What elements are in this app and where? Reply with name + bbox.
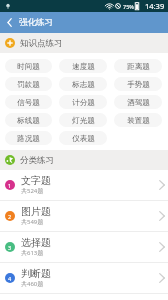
button[interactable]: 标线题	[5, 113, 52, 127]
staticText: 计分题	[72, 98, 95, 107]
staticText: 2	[8, 213, 12, 220]
button[interactable]: 酒驾题	[114, 95, 162, 109]
staticText: 共549题	[21, 218, 44, 226]
staticText: 共613题	[21, 249, 44, 257]
button[interactable]: 计分题	[59, 95, 107, 109]
staticText: 标线题	[17, 116, 40, 125]
staticText: 强化练习	[19, 17, 53, 28]
button[interactable]: 速度题	[59, 59, 107, 73]
staticText: 4	[8, 275, 12, 282]
staticText: 共524题	[21, 187, 44, 195]
button[interactable]: 3	[0, 232, 168, 263]
button[interactable]: 装置题	[114, 113, 162, 127]
staticText: 14:39	[145, 1, 165, 11]
button[interactable]: 标志题	[59, 77, 107, 91]
staticText: 75%	[123, 3, 134, 10]
staticText: 判断题	[21, 267, 51, 280]
staticText: 路况题	[17, 134, 40, 143]
button[interactable]: 距离题	[114, 59, 162, 73]
staticText: 分类练习	[20, 155, 54, 166]
button[interactable]: 手势题	[114, 77, 162, 91]
staticText: 手势题	[127, 80, 150, 89]
staticText: 距离题	[127, 62, 150, 71]
staticText: 知识点练习	[20, 38, 63, 49]
button[interactable]: Back	[0, 12, 18, 33]
button[interactable]: 4	[0, 263, 168, 294]
button[interactable]: 罚款题	[5, 77, 52, 91]
button[interactable]: 信号题	[5, 95, 52, 109]
staticText: 标志题	[72, 80, 95, 89]
staticText: 罚款题	[17, 80, 40, 89]
button[interactable]: 时间题	[5, 59, 52, 73]
staticText: 文字题	[21, 174, 51, 187]
staticText: 酒驾题	[127, 98, 150, 107]
staticText: 灯光题	[72, 116, 95, 125]
staticText: 装置题	[127, 116, 150, 125]
staticText: 3	[8, 244, 12, 251]
button[interactable]: 2	[0, 201, 168, 232]
button[interactable]: 路况题	[5, 131, 52, 145]
staticText: 共460题	[21, 280, 44, 288]
staticText: 时间题	[17, 62, 40, 71]
staticText: 仪表题	[72, 134, 95, 143]
button[interactable]: 灯光题	[59, 113, 107, 127]
staticText: 1	[8, 182, 12, 189]
button[interactable]: 仪表题	[59, 131, 107, 145]
staticText: 速度题	[72, 62, 95, 71]
staticText: 选择题	[21, 236, 51, 249]
staticText: 信号题	[17, 98, 40, 107]
staticText: 图片题	[21, 205, 51, 218]
button[interactable]: 1	[0, 170, 168, 201]
